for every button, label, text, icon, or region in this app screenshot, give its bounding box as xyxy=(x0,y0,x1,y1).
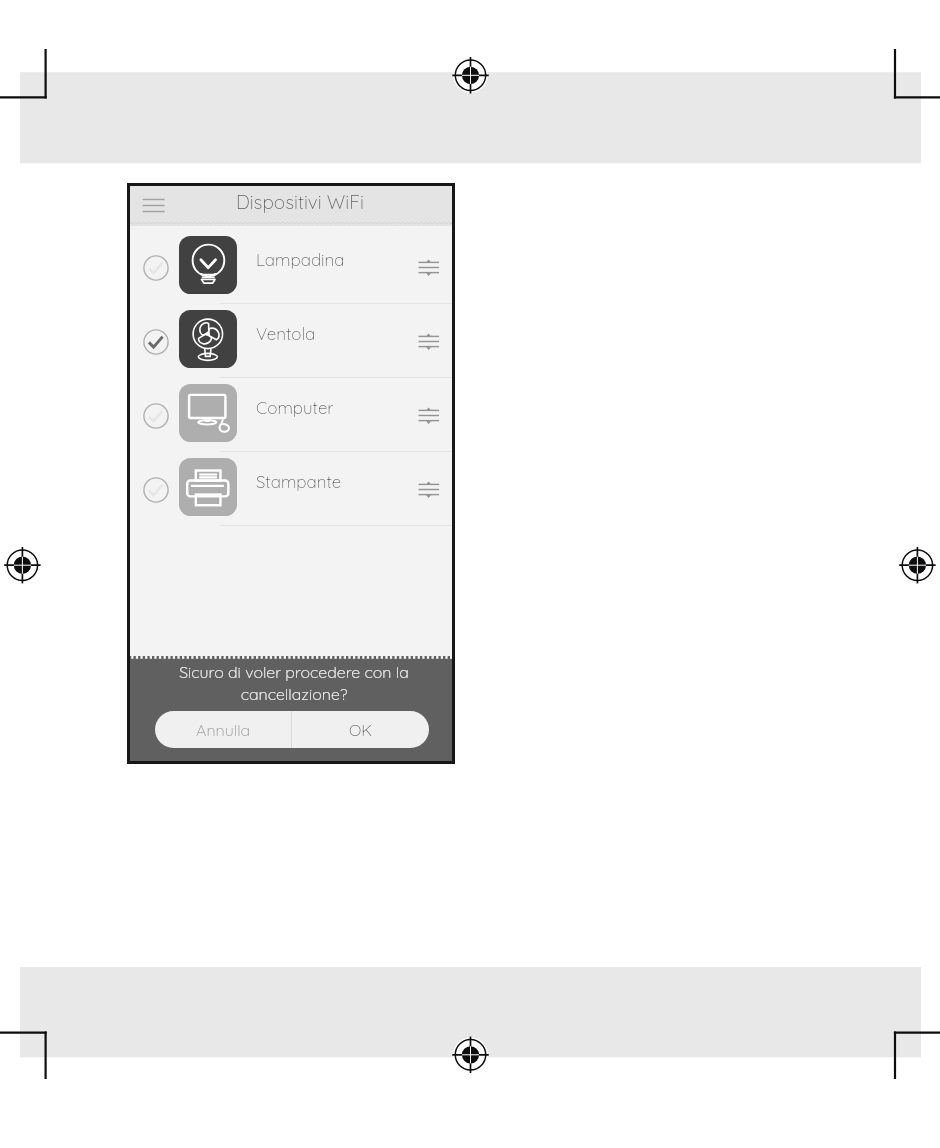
button[interactable]: Menu xyxy=(136,191,171,220)
staticText: Sicuro di voler procedere con la cancell… xyxy=(133,662,455,704)
staticText: Annulla xyxy=(196,720,251,740)
button[interactable]: Stampante xyxy=(130,452,452,526)
button[interactable]: Regola xyxy=(414,398,444,428)
staticText: Stampante xyxy=(256,471,342,492)
button[interactable]: Ventola xyxy=(130,304,452,378)
staticText: Ventola xyxy=(256,323,316,344)
button[interactable]: Regola xyxy=(414,250,444,280)
button[interactable]: Annulla xyxy=(155,711,291,748)
button[interactable]: Regola xyxy=(414,324,444,354)
button[interactable]: Regola xyxy=(414,472,444,502)
staticText: Computer xyxy=(256,397,334,418)
button[interactable]: OK xyxy=(292,711,429,748)
button[interactable]: Lampadina xyxy=(130,226,452,304)
staticText: Dispositivi WiFi xyxy=(236,190,364,214)
staticText: OK xyxy=(349,720,373,740)
button[interactable]: Computer xyxy=(130,378,452,452)
staticText: Lampadina xyxy=(256,249,345,270)
